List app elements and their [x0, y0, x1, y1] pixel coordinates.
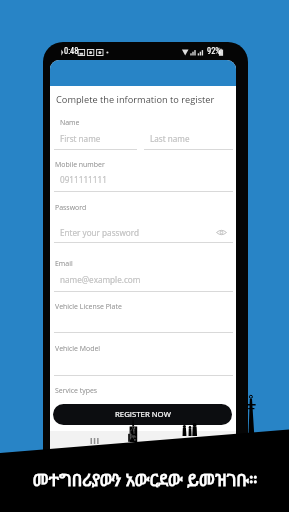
staticText: First name: [60, 133, 101, 144]
staticText: Mobile number: [55, 160, 105, 169]
staticText: Vehicle Model: [55, 344, 101, 353]
staticText: Name: [60, 118, 80, 127]
staticText: Last name: [150, 133, 190, 144]
staticText: Email: [55, 259, 73, 268]
staticText: Password: [55, 203, 87, 212]
staticText: 0911111111: [60, 174, 107, 185]
staticText: Enter your password: [60, 227, 140, 238]
staticText: REGISTER NOW: [115, 409, 171, 420]
staticText: 92%: [207, 46, 221, 56]
staticText: Service types: [55, 386, 98, 395]
staticText: Complete the information to register: [56, 93, 215, 106]
staticText: name@example.com: [60, 274, 141, 285]
button[interactable]: Show password: [216, 229, 227, 236]
staticText: Vehicle License Plate: [55, 302, 122, 311]
staticText: መተግበሪያውን አውርደው ይመዝገቡ።: [32, 468, 258, 491]
button[interactable]: REGISTER NOW: [53, 404, 232, 425]
staticText: 0:48: [64, 46, 79, 56]
